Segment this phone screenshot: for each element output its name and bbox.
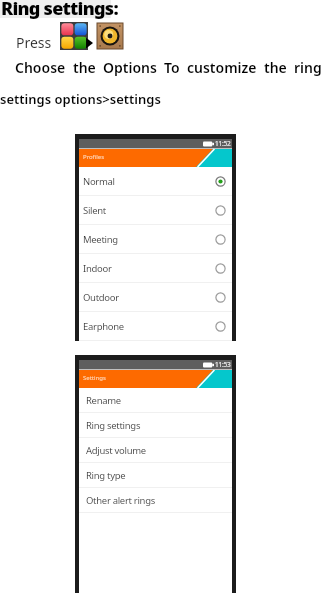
staticText: Ring settings: (1, 0, 118, 21)
button[interactable]: Earphone (79, 312, 232, 340)
staticText: Choose (15, 58, 66, 77)
staticText: Rename (86, 394, 121, 407)
staticText: Ring settings (86, 419, 141, 432)
staticText: Silent (83, 204, 106, 217)
staticText: ring (294, 58, 322, 77)
staticText: the (264, 58, 287, 77)
staticText: Outdoor (83, 291, 119, 304)
button[interactable]: Speaker (97, 23, 123, 49)
staticText: Other alert rings (86, 494, 155, 507)
staticText: Options (103, 58, 157, 77)
button[interactable]: Meeting (79, 225, 232, 253)
button[interactable]: Ring settings (79, 413, 232, 437)
button[interactable]: Indoor (79, 254, 232, 282)
staticText: Profiles (83, 153, 105, 161)
staticText: Earphone (83, 320, 124, 333)
button[interactable]: Normal (79, 167, 232, 195)
button[interactable]: Ring type (79, 463, 232, 487)
button[interactable]: Other alert rings (79, 488, 232, 512)
button[interactable]: Silent (79, 196, 232, 224)
button[interactable]: Menu (60, 22, 93, 50)
staticText: Ring type (86, 469, 126, 482)
button[interactable]: Outdoor (79, 283, 232, 311)
staticText: settings options>settings (0, 90, 161, 108)
staticText: Meeting (83, 233, 118, 246)
staticText: Press (16, 33, 52, 52)
button[interactable]: Rename (79, 388, 232, 412)
staticText: Indoor (83, 262, 112, 275)
button[interactable]: Adjust volume (79, 438, 232, 462)
staticText: 11:53 (215, 360, 231, 369)
staticText: To (164, 58, 180, 77)
staticText: 11:52 (215, 139, 231, 148)
staticText: Normal (83, 175, 115, 188)
staticText: customize (187, 58, 257, 77)
staticText: the (73, 58, 96, 77)
staticText: Settings (83, 374, 106, 382)
staticText: Adjust volume (86, 444, 146, 457)
